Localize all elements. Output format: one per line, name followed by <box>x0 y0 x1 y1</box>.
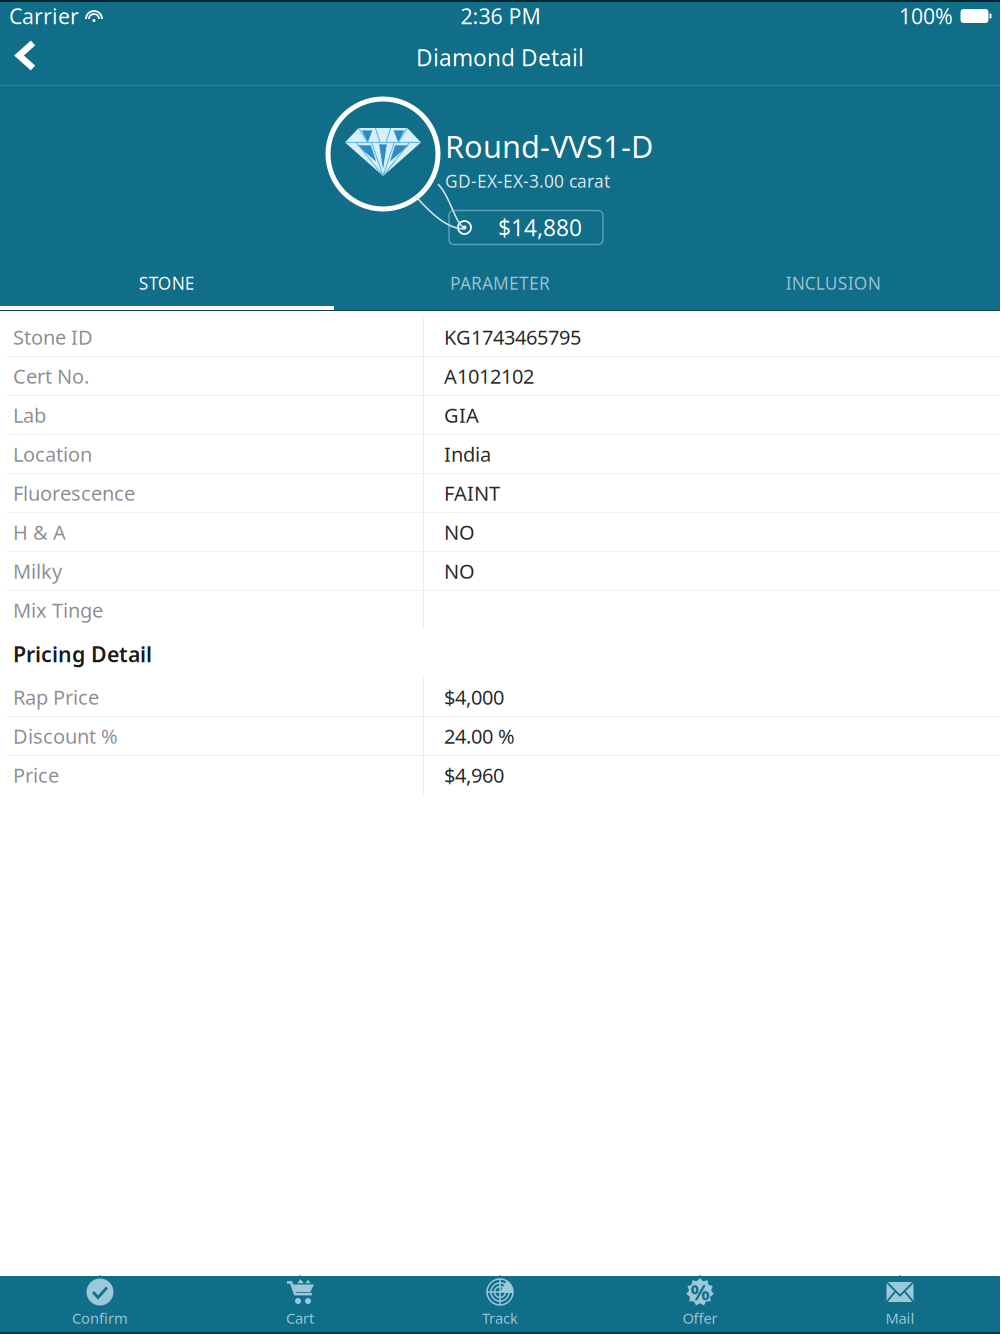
button[interactable]: Track <box>400 1275 600 1333</box>
staticText: Milky <box>13 558 62 584</box>
staticText: 24.00 % <box>444 723 515 749</box>
staticText: STONE <box>139 271 195 294</box>
staticText: Carrier <box>9 2 79 30</box>
staticText: Track <box>482 1308 518 1328</box>
staticText: $14,880 <box>498 212 582 242</box>
staticText: KG1743465795 <box>444 324 581 350</box>
button[interactable]: Mail <box>800 1275 1000 1333</box>
staticText: Offer <box>682 1308 717 1328</box>
staticText: H & A <box>13 519 66 545</box>
staticText: Rap Price <box>13 684 99 710</box>
staticText: GIA <box>444 402 479 428</box>
staticText: Mix Tinge <box>13 597 103 623</box>
staticText: PARAMETER <box>450 271 550 294</box>
staticText: Diamond Detail <box>416 42 584 72</box>
staticText: Round-VVS1-D <box>445 126 653 166</box>
staticText: Cert No. <box>13 363 89 389</box>
staticText: Confirm <box>72 1308 128 1328</box>
staticText: $4,960 <box>444 762 504 788</box>
staticText: FAINT <box>444 480 500 506</box>
staticText: 2:36 PM <box>460 2 540 30</box>
staticText: Price <box>13 762 59 788</box>
button[interactable]: PARAMETER <box>333 260 667 306</box>
staticText: Lab <box>13 402 46 428</box>
staticText: $4,000 <box>444 684 504 710</box>
staticText: % <box>690 1278 709 1306</box>
staticText: GD-EX-EX-3.00 carat <box>445 169 610 192</box>
staticText: A1012102 <box>444 363 534 389</box>
button[interactable]: STONE <box>0 260 333 306</box>
staticText: India <box>444 441 491 467</box>
staticText: Mail <box>885 1308 914 1328</box>
button[interactable]: Back <box>0 29 59 85</box>
staticText: Fluorescence <box>13 480 135 506</box>
staticText: INCLUSION <box>786 271 881 294</box>
button[interactable]: % <box>600 1275 800 1333</box>
button[interactable]: Confirm <box>0 1275 200 1333</box>
staticText: Stone ID <box>13 324 93 350</box>
button[interactable]: Cart <box>200 1275 400 1333</box>
staticText: NO <box>444 519 475 545</box>
staticText: Pricing Detail <box>13 640 152 668</box>
staticText: NO <box>444 558 475 584</box>
staticText: Location <box>13 441 92 467</box>
staticText: Discount % <box>13 723 118 749</box>
staticText: 100% <box>899 2 953 30</box>
staticText: Cart <box>286 1308 314 1328</box>
button[interactable]: INCLUSION <box>667 260 1000 306</box>
